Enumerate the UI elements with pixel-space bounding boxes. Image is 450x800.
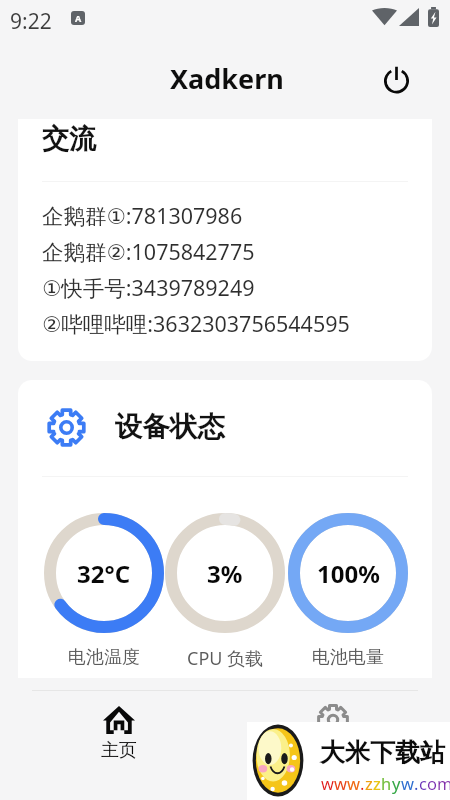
staticText: w bbox=[321, 772, 334, 794]
staticText: ①快手号:3439789249 bbox=[42, 273, 255, 302]
staticText: 主页 bbox=[101, 739, 137, 762]
staticText: c bbox=[419, 772, 427, 794]
staticText: 设备状态 bbox=[115, 410, 225, 445]
staticText: 32°C bbox=[77, 557, 131, 590]
staticText: 3% bbox=[207, 557, 243, 590]
button[interactable]: 企鹅群①:781307986 bbox=[18, 195, 432, 231]
staticText: CPU 负载 bbox=[187, 646, 264, 671]
staticText: w bbox=[347, 772, 360, 794]
staticText: 100% bbox=[317, 557, 380, 590]
staticText: m bbox=[437, 772, 450, 794]
staticText: 电池电量 bbox=[312, 646, 384, 669]
button[interactable]: ②哔哩哔哩:3632303756544595 bbox=[18, 303, 432, 339]
staticText: 交流 bbox=[42, 122, 96, 156]
button[interactable]: ①快手号:3439789249 bbox=[18, 267, 432, 303]
staticText: . bbox=[360, 772, 365, 794]
staticText: 电池温度 bbox=[68, 646, 140, 669]
staticText: z bbox=[365, 772, 373, 794]
button[interactable]: 设置 bbox=[263, 702, 403, 772]
staticText: Xadkern bbox=[170, 60, 284, 97]
staticText: 9:22 bbox=[10, 7, 52, 36]
staticText: 设置 bbox=[315, 742, 351, 765]
staticText: h bbox=[381, 772, 392, 794]
button[interactable]: 主页 bbox=[49, 700, 189, 770]
staticText: . bbox=[414, 772, 419, 794]
staticText: o bbox=[427, 772, 437, 794]
staticText: 企鹅群①:781307986 bbox=[42, 201, 243, 230]
button[interactable]: Power bbox=[377, 60, 415, 98]
staticText: 企鹅群②:1075842775 bbox=[42, 237, 255, 266]
staticText: z bbox=[373, 772, 381, 794]
staticText: A bbox=[75, 12, 82, 24]
staticText: y bbox=[392, 772, 401, 794]
staticText: 大米下载站 bbox=[320, 737, 445, 768]
staticText: ②哔哩哔哩:3632303756544595 bbox=[42, 309, 350, 338]
staticText: w bbox=[401, 772, 414, 794]
staticText: w bbox=[334, 772, 347, 794]
button[interactable]: 企鹅群②:1075842775 bbox=[18, 231, 432, 267]
